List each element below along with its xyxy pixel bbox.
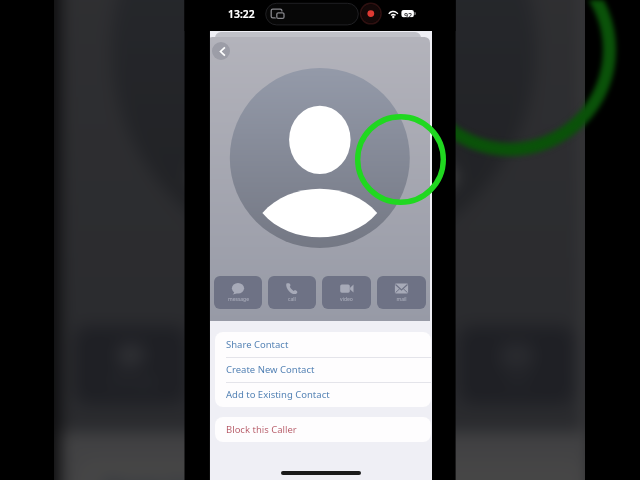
button[interactable]: Create New Contact bbox=[215, 357, 431, 382]
button[interactable]: video bbox=[322, 276, 371, 309]
button[interactable]: Add to Existing Contact bbox=[215, 382, 431, 407]
button[interactable]: mail bbox=[377, 276, 426, 309]
staticText: 13:22 bbox=[228, 7, 255, 21]
button[interactable]: call bbox=[268, 276, 316, 309]
staticText: Share Contact bbox=[102, 472, 251, 480]
button[interactable]: Back bbox=[212, 42, 230, 60]
staticText: Create New Contact bbox=[226, 363, 315, 376]
button[interactable]: Share Contact bbox=[215, 332, 431, 357]
staticText: call bbox=[249, 373, 268, 390]
button[interactable]: message bbox=[214, 276, 262, 309]
staticText: call bbox=[288, 296, 296, 303]
staticText: video bbox=[371, 373, 402, 390]
staticText: Block this Caller bbox=[226, 423, 297, 436]
staticText: Add to Existing Contact bbox=[226, 388, 330, 401]
button[interactable]: message bbox=[74, 326, 187, 404]
staticText: Share Contact bbox=[226, 338, 289, 351]
staticText: mail bbox=[396, 296, 407, 303]
button[interactable]: video bbox=[329, 326, 445, 404]
staticText: video bbox=[340, 296, 353, 303]
staticText: 92 bbox=[404, 10, 413, 20]
button[interactable]: Share Contact bbox=[76, 458, 585, 480]
staticText: message bbox=[228, 296, 249, 303]
button[interactable]: Block this Caller bbox=[215, 417, 431, 442]
button[interactable]: call bbox=[202, 326, 315, 404]
